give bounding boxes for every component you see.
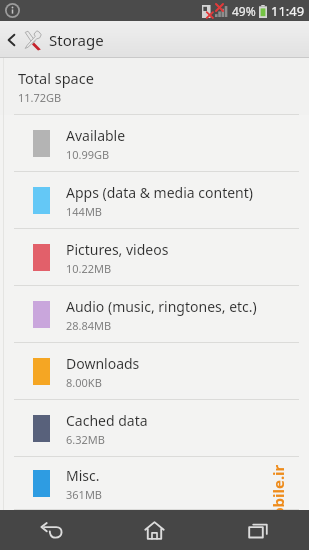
staticText: Downloads <box>66 354 140 373</box>
staticText: 11.72GB <box>18 90 62 105</box>
staticText: 10.22MB <box>66 261 112 276</box>
button[interactable]: Recent apps <box>206 510 309 550</box>
staticText: Storage <box>49 30 104 50</box>
staticText: 361MB <box>66 487 103 502</box>
button[interactable]: Available <box>0 115 309 172</box>
button[interactable]: Back <box>0 510 103 550</box>
staticText: 28.84MB <box>66 318 112 333</box>
staticText: Misc. <box>66 466 100 485</box>
staticText: 6.32MB <box>66 432 105 447</box>
button[interactable]: Home <box>103 510 206 550</box>
other: Tools <box>22 30 42 50</box>
staticText: 8.00KB <box>66 375 102 390</box>
staticText: 10.99GB <box>66 147 110 162</box>
staticText: Pictures, videos <box>66 240 169 259</box>
staticText: Available <box>66 126 126 145</box>
button[interactable]: Audio (music, ringtones, etc.) <box>0 286 309 343</box>
staticText: 49% <box>232 3 256 19</box>
staticText: Total space <box>18 68 94 88</box>
staticText: 144MB <box>66 204 103 219</box>
button[interactable]: Tools <box>0 21 112 58</box>
staticText: Apps (data & media content) <box>66 183 254 202</box>
button[interactable]: Apps (data & media content) <box>0 172 309 229</box>
staticText: 11:49 <box>271 2 305 20</box>
button[interactable]: Cached data <box>0 400 309 457</box>
button[interactable]: Misc. <box>0 457 309 510</box>
staticText: mobile.ir <box>267 464 287 531</box>
button[interactable]: Pictures, videos <box>0 229 309 286</box>
staticText: Audio (music, ringtones, etc.) <box>66 297 257 316</box>
staticText: Cached data <box>66 411 148 430</box>
button[interactable]: Downloads <box>0 343 309 400</box>
